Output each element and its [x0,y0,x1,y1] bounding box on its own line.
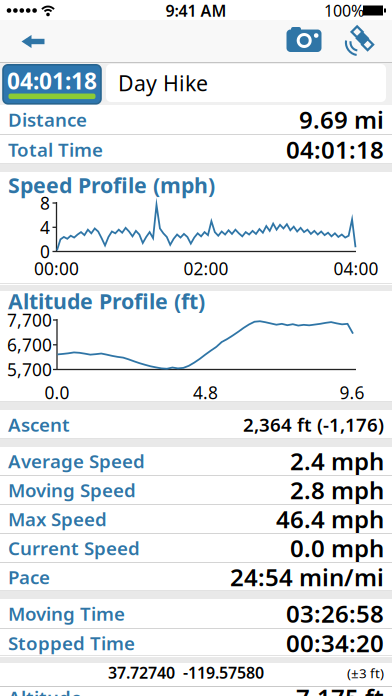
staticText: 6,700 [7,333,52,356]
staticText: Moving Time [8,601,125,626]
staticText: 37.72740 -119.57580 [108,662,264,683]
staticText: 02:00 [183,257,228,280]
staticText: 4 [40,216,50,239]
staticText: 0 [40,240,50,263]
staticText: Day Hike [118,69,208,97]
staticText: (±3 ft) [347,664,384,682]
staticText: Max Speed [8,507,107,531]
button[interactable]: Camera [286,26,321,52]
staticText: 0.0 mph [290,532,384,564]
staticText: 9.6 [339,381,364,404]
staticText: Distance [8,107,87,132]
staticText: Average Speed [8,449,145,473]
staticText: 100% [324,0,364,21]
staticText: 24:54 min/mi [230,561,384,593]
button[interactable]: Recording time 04:01:18 [3,65,101,104]
staticText: 04:01:18 [7,66,97,96]
staticText: Total Time [8,137,103,162]
staticText: 2.4 mph [290,445,384,477]
staticText: 04:00 [333,257,378,280]
staticText: 04:01:18 [286,134,384,165]
staticText: Ascent [8,412,70,437]
staticText: Pace [8,565,50,589]
staticText: 00:34:20 [286,627,384,659]
staticText: 46.4 mph [276,503,384,535]
staticText: Current Speed [8,536,140,560]
staticText: 7,175 ft [296,682,384,696]
staticText: 8 [40,191,50,214]
staticText: 0.0 [44,381,69,404]
button[interactable]: Track name Day Hike [106,64,386,102]
staticText: Speed Profile (mph) [8,171,215,199]
staticText: 9.69 mi [299,104,384,135]
staticText: Altitude [8,685,82,696]
staticText: 2.8 mph [290,474,384,506]
staticText: Moving Speed [8,478,136,502]
staticText: 2,364 ft (-1,176) [243,412,384,437]
staticText: 7,700 [7,308,52,331]
staticText: 5,700 [7,358,52,381]
staticText: 03:26:58 [286,598,384,629]
staticText: 4.8 [193,381,218,404]
button[interactable]: Satellite [342,22,382,58]
button[interactable]: Back [11,26,55,56]
staticText: 9:41 AM [165,0,226,21]
staticText: 00:00 [34,257,79,280]
staticText: Stopped Time [8,631,135,655]
staticText: Altitude Profile (ft) [8,287,205,315]
